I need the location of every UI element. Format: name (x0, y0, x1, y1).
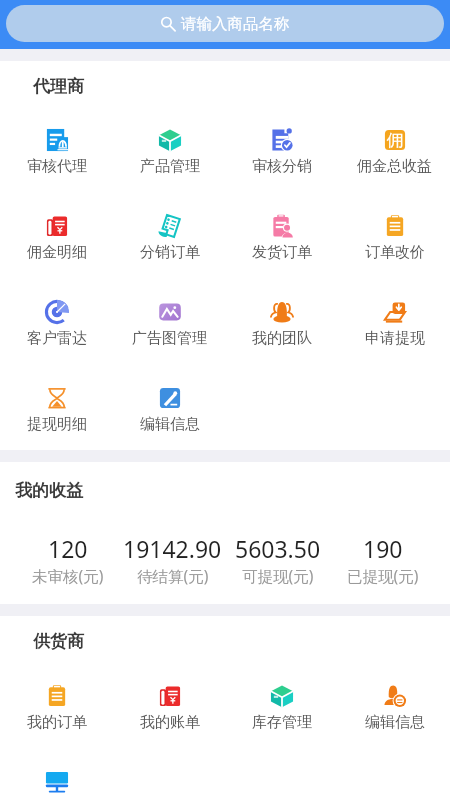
staticText: 订单改价 (365, 243, 425, 262)
staticText: 库存管理 (252, 713, 312, 732)
staticText: 120 (48, 533, 88, 564)
staticText: 分销订单 (140, 243, 200, 262)
button[interactable]: 我的订单 (0, 684, 113, 732)
button[interactable]: 5603.50 (225, 533, 330, 586)
button[interactable]: 19142.90 (120, 533, 225, 586)
staticText: 请输入商品名称 (181, 14, 290, 34)
button[interactable]: 数据统计 (0, 770, 113, 800)
staticText: 已提现(元) (347, 565, 419, 586)
button[interactable]: 我的账单 (113, 684, 226, 732)
button[interactable]: 发货订单 (225, 214, 338, 262)
button[interactable]: 佣金明细 (0, 214, 113, 262)
button[interactable]: 提现明细 (0, 386, 113, 434)
staticText: 我的收益 (15, 480, 83, 501)
staticText: 5603.50 (235, 533, 321, 564)
button[interactable]: 编辑信息 (338, 684, 450, 732)
staticText: 佣金总收益 (357, 157, 432, 176)
button[interactable]: 请输入商品名称 (6, 5, 444, 42)
staticText: 我的团队 (252, 329, 312, 348)
staticText: 编辑信息 (365, 713, 425, 732)
staticText: 佣金明细 (27, 243, 87, 262)
staticText: 供货商 (33, 631, 84, 652)
staticText: 可提现(元) (242, 565, 314, 586)
button[interactable]: 库存管理 (225, 684, 338, 732)
staticText: 19142.90 (123, 533, 222, 564)
staticText: 审核代理 (27, 157, 87, 176)
staticText: 审核分销 (252, 157, 312, 176)
staticText: 发货订单 (252, 243, 312, 262)
staticText: 广告图管理 (132, 329, 207, 348)
staticText: 190 (363, 533, 403, 564)
button[interactable]: 审核分销 (225, 128, 338, 176)
staticText: 代理商 (33, 76, 84, 97)
staticText: 待结算(元) (137, 565, 209, 586)
button[interactable]: 产品管理 (113, 128, 226, 176)
staticText: 产品管理 (140, 157, 200, 176)
button[interactable]: 申请提现 (338, 300, 450, 348)
staticText: 我的订单 (27, 713, 87, 732)
button[interactable]: 编辑信息 (113, 386, 226, 434)
button[interactable]: 佣金总收益 (338, 128, 450, 176)
button[interactable]: 190 (330, 533, 435, 586)
staticText: 客户雷达 (27, 329, 87, 348)
staticText: 我的账单 (140, 713, 200, 732)
staticText: 佣 (387, 130, 404, 151)
button[interactable]: 广告图管理 (113, 300, 226, 348)
staticText: 未审核(元) (32, 565, 104, 586)
button[interactable]: 订单改价 (338, 214, 450, 262)
button[interactable]: 分销订单 (113, 214, 226, 262)
staticText: 申请提现 (365, 329, 425, 348)
button[interactable]: 120 (15, 533, 120, 586)
button[interactable]: 客户雷达 (0, 300, 113, 348)
button[interactable]: 我的团队 (225, 300, 338, 348)
staticText: 编辑信息 (140, 415, 200, 434)
staticText: 提现明细 (27, 415, 87, 434)
button[interactable]: 审核代理 (0, 128, 113, 176)
